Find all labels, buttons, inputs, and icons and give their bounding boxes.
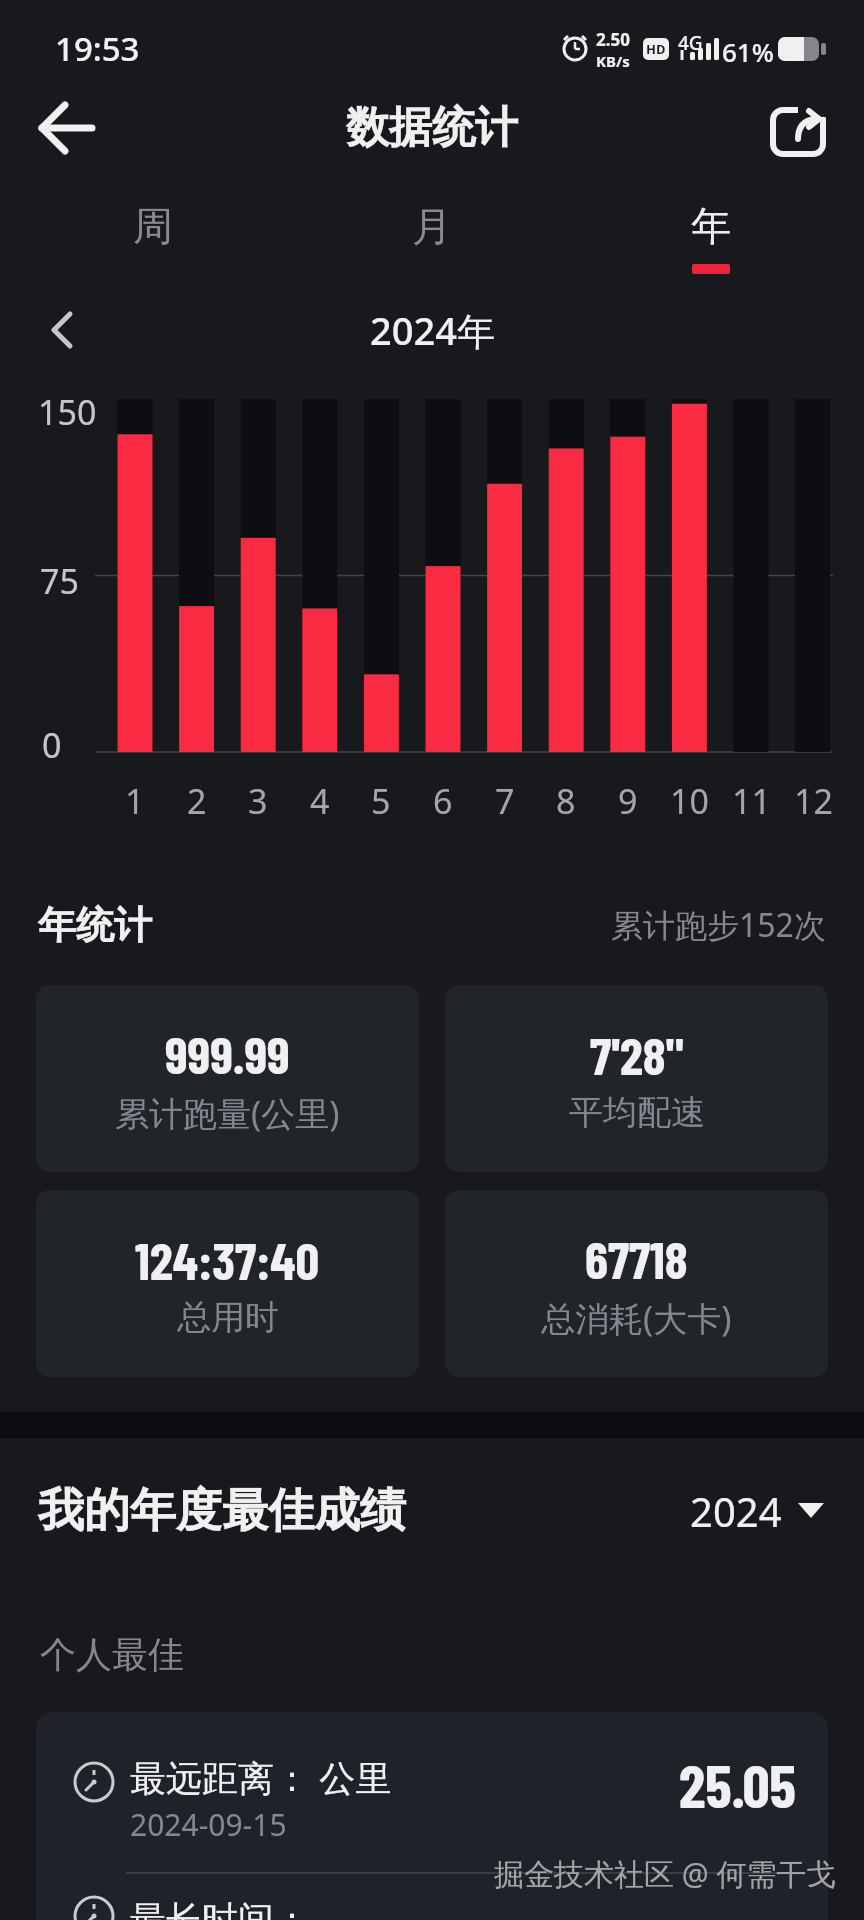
staticText: 124:37:40 — [135, 1228, 320, 1290]
staticText: 6 — [433, 778, 453, 824]
staticText: 8 — [556, 778, 576, 824]
button[interactable]: 月 — [292, 171, 571, 275]
staticText: 10 — [670, 778, 709, 824]
staticText: 5 — [371, 778, 391, 824]
staticText: 数据统计 — [346, 101, 518, 155]
staticText: 25.05 — [679, 1748, 796, 1820]
button[interactable]: 124:37:40 — [36, 1190, 419, 1377]
button[interactable] — [770, 99, 828, 157]
staticText: 150 — [38, 389, 97, 435]
staticText: 最远距离： 公里 — [130, 1753, 392, 1802]
staticText: 0 — [42, 722, 62, 768]
staticText: 最长时间： — [130, 1894, 320, 1920]
staticText: 2024-09-15 — [130, 1804, 287, 1845]
staticText: 2 — [187, 778, 207, 824]
staticText: 61% — [722, 34, 774, 69]
staticText: 2024 — [690, 1484, 782, 1538]
staticText: 我的年度最佳成绩 — [38, 1482, 406, 1540]
staticText: KB/s — [596, 51, 630, 71]
button[interactable]: 999.99 — [36, 985, 419, 1172]
button[interactable]: 2024 — [690, 1484, 826, 1538]
staticText: 2024年 — [370, 304, 495, 356]
staticText: 999.99 — [165, 1022, 290, 1084]
staticText: 2.50 — [596, 28, 630, 51]
staticText: 年统计 — [38, 901, 152, 949]
staticText: 掘金技术社区 @ 何需干戈 — [494, 1853, 837, 1894]
staticText: 75 — [40, 558, 79, 604]
button[interactable]: 7'28" — [445, 985, 828, 1172]
button[interactable] — [40, 306, 88, 354]
button[interactable]: 周 — [14, 171, 292, 275]
staticText: 7 — [495, 778, 515, 824]
staticText: 累计跑量(公里) — [115, 1090, 340, 1136]
staticText: 年 — [691, 201, 731, 251]
staticText: 周 — [133, 201, 173, 251]
button[interactable]: 67718 — [445, 1190, 828, 1377]
staticText: 7'28" — [590, 1023, 684, 1085]
button[interactable]: 最长时间： — [36, 1874, 828, 1920]
staticText: 个人最佳 — [40, 1632, 184, 1677]
staticText: 4 — [310, 778, 330, 824]
staticText: 月 — [412, 201, 452, 251]
staticText: 总消耗(大卡) — [541, 1295, 732, 1341]
staticText: 19:53 — [55, 26, 140, 71]
staticText: 12 — [794, 778, 833, 824]
staticText: 67718 — [585, 1227, 688, 1289]
staticText: 4G — [678, 30, 703, 56]
staticText: 平均配速 — [569, 1091, 705, 1134]
staticText: HD — [646, 40, 666, 58]
button[interactable]: 年 — [571, 171, 850, 275]
staticText: 累计跑步152次 — [611, 903, 826, 947]
staticText: 9 — [618, 778, 638, 824]
staticText: 3 — [248, 778, 268, 824]
staticText: 总用时 — [177, 1296, 279, 1339]
staticText: 11 — [732, 778, 771, 824]
button[interactable]: 最远距离： 公里 — [36, 1712, 828, 1872]
button[interactable] — [30, 95, 102, 161]
staticText: 1 — [125, 778, 145, 824]
